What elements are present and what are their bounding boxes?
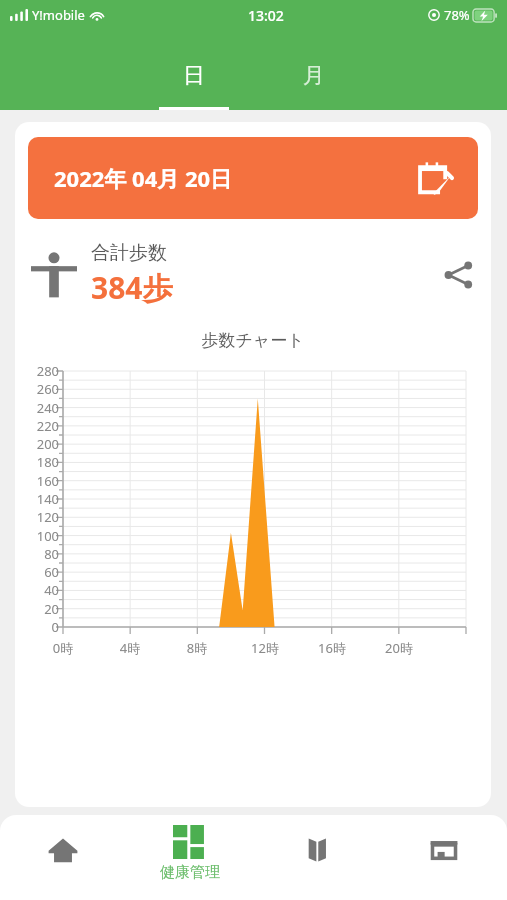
staticText: 180	[15, 453, 59, 471]
staticText: 歩数チャート	[15, 330, 491, 351]
staticText: 0時	[42, 639, 84, 657]
staticText: Y!mobile	[32, 6, 85, 24]
staticText: 260	[15, 380, 59, 398]
staticText: 2022年 04月 20日	[54, 163, 233, 193]
staticText: 384歩	[91, 267, 173, 308]
staticText: 240	[15, 399, 59, 417]
staticText: 160	[15, 472, 59, 490]
staticText: 78%	[444, 6, 470, 24]
button[interactable]: 健康管理	[126, 815, 253, 900]
staticText: 200	[15, 435, 59, 453]
button[interactable]: Home	[0, 815, 126, 900]
staticText: 健康管理	[160, 863, 220, 882]
staticText: 13:02	[248, 6, 284, 25]
staticText: 220	[15, 417, 59, 435]
staticText: 合計歩数	[91, 241, 167, 265]
staticText: 月	[303, 62, 325, 90]
staticText: 140	[15, 490, 59, 508]
staticText: 0	[15, 618, 59, 636]
staticText: 120	[15, 508, 59, 526]
staticText: 80	[15, 545, 59, 563]
staticText: 40	[15, 581, 59, 599]
staticText: 60	[15, 563, 59, 581]
staticText: 日	[183, 62, 205, 90]
button[interactable]: 月	[269, 30, 359, 110]
staticText: 100	[15, 527, 59, 545]
staticText: 16時	[311, 639, 353, 657]
button[interactable]: 日	[149, 30, 239, 110]
staticText: 8時	[176, 639, 218, 657]
staticText: 20	[15, 600, 59, 618]
button[interactable]: Map	[253, 815, 380, 900]
staticText: 280	[15, 362, 59, 380]
staticText: 4時	[109, 639, 151, 657]
button[interactable]: Store	[380, 815, 507, 900]
other: 日付を編集	[418, 161, 452, 195]
button[interactable]: 共有	[441, 258, 475, 292]
staticText: 20時	[378, 639, 420, 657]
staticText: 12時	[244, 639, 286, 657]
button[interactable]: 2022年 04月 20日	[28, 137, 478, 219]
